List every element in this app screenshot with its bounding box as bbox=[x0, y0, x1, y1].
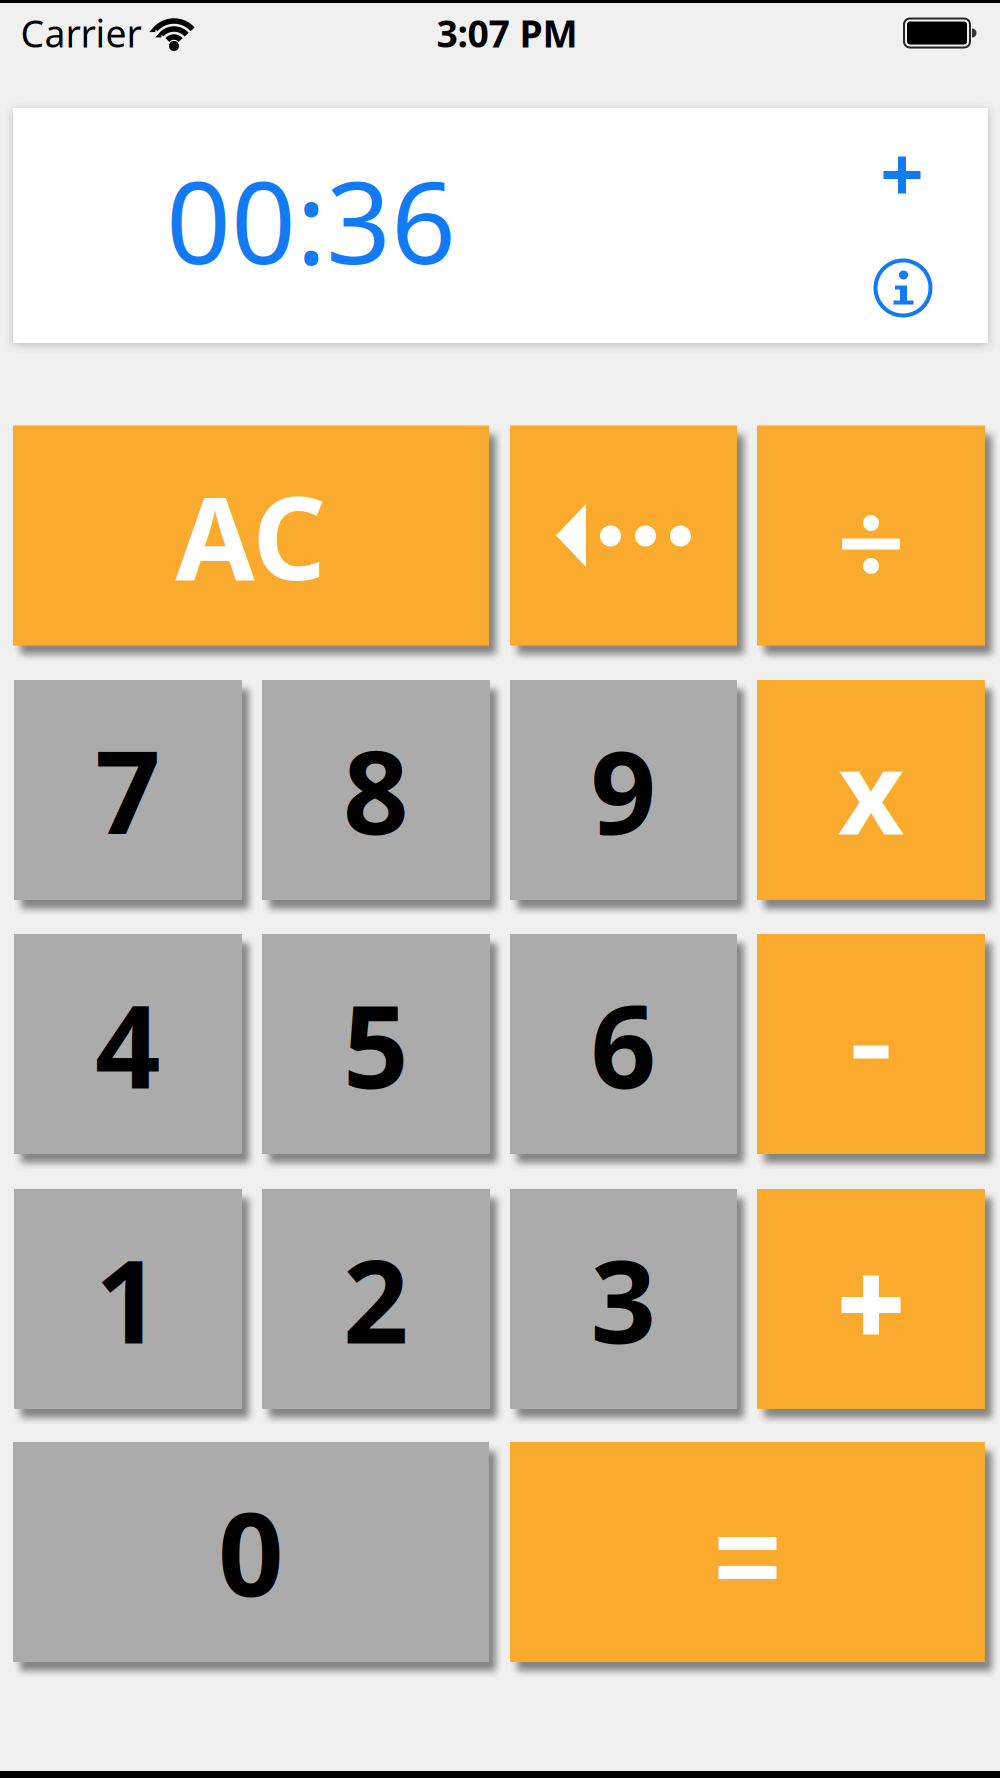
staticText: 4 bbox=[95, 968, 161, 1120]
staticText: 1 bbox=[95, 1223, 161, 1375]
staticText: 5 bbox=[343, 968, 409, 1120]
staticText: 2 bbox=[343, 1223, 409, 1375]
staticText: 7 bbox=[95, 714, 161, 866]
button[interactable]: Add time entry bbox=[867, 140, 937, 210]
button[interactable]: 2 bbox=[262, 1189, 490, 1409]
button[interactable]: 5 bbox=[262, 934, 490, 1154]
staticText: 00:36 bbox=[166, 145, 456, 295]
button[interactable]: 3 bbox=[510, 1189, 737, 1409]
button[interactable]: 1 bbox=[14, 1189, 242, 1409]
button[interactable]: 4 bbox=[14, 934, 242, 1154]
button[interactable]: 6 bbox=[510, 934, 737, 1154]
button[interactable]: Divide bbox=[757, 425, 985, 645]
button[interactable]: Subtract bbox=[757, 934, 985, 1154]
button[interactable]: 0 bbox=[13, 1442, 489, 1662]
staticText: Carrier bbox=[20, 8, 141, 58]
staticText: x bbox=[838, 714, 904, 866]
staticText: 9 bbox=[590, 714, 656, 866]
button[interactable]: AC bbox=[13, 425, 489, 645]
button[interactable]: Backspace bbox=[510, 425, 737, 645]
staticText: 3 bbox=[590, 1223, 656, 1375]
staticText: 0 bbox=[218, 1476, 284, 1628]
button[interactable]: 7 bbox=[14, 680, 242, 900]
button[interactable]: 9 bbox=[510, 680, 737, 900]
button[interactable]: x bbox=[757, 680, 985, 900]
button[interactable]: Add bbox=[757, 1189, 985, 1409]
staticText: AC bbox=[175, 459, 326, 612]
staticText: 8 bbox=[343, 714, 409, 866]
button[interactable]: Info bbox=[868, 253, 938, 323]
button[interactable]: Equals bbox=[510, 1442, 985, 1662]
staticText: 3:07 PM bbox=[436, 8, 577, 58]
button[interactable]: 8 bbox=[262, 680, 490, 900]
staticText: 6 bbox=[590, 968, 656, 1120]
